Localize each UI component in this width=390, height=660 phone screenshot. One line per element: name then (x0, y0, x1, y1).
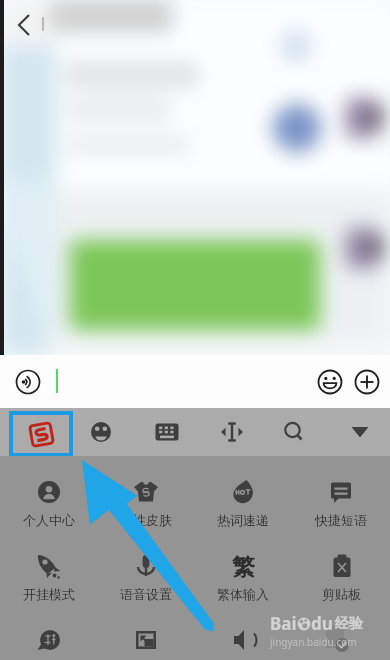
button[interactable]: 开挂模式 (0, 540, 97, 614)
staticText: 个人中心 (23, 512, 75, 528)
button[interactable]: none (292, 614, 390, 660)
button[interactable]: Keyboard (147, 408, 187, 456)
button[interactable]: 热词速递 (194, 466, 292, 540)
button[interactable]: Back (5, 6, 43, 44)
button[interactable]: Move cursor (212, 408, 252, 456)
button[interactable]: 语音设置 (97, 540, 194, 614)
staticText: 经验 (335, 615, 363, 633)
staticText: 个性皮肤 (120, 512, 172, 528)
staticText: 快捷短语 (315, 512, 367, 528)
staticText: jingyan.baidu.com (270, 635, 357, 649)
button[interactable]: 剪贴板 (292, 540, 390, 614)
button[interactable]: Sogou menu (13, 415, 69, 453)
button[interactable]: Emoji (81, 408, 121, 456)
button[interactable]: 快捷短语 (292, 466, 390, 540)
button[interactable]: Emoji (314, 366, 346, 398)
button[interactable]: translate (0, 614, 97, 660)
button[interactable]: Search (274, 408, 314, 456)
button[interactable]: Add (351, 366, 383, 398)
button[interactable]: 个人中心 (0, 466, 97, 540)
button[interactable]: 繁体输入 (194, 540, 292, 614)
staticText: 语音设置 (120, 586, 172, 602)
staticText: 开挂模式 (23, 586, 75, 602)
button[interactable]: Collapse (340, 408, 380, 456)
staticText: 热词速递 (217, 512, 269, 528)
button[interactable]: 个性皮肤 (97, 466, 194, 540)
staticText: du (311, 612, 333, 635)
staticText: 剪贴板 (322, 586, 361, 602)
button[interactable]: split (97, 614, 194, 660)
staticText: 繁体输入 (217, 586, 269, 602)
button[interactable]: sound (194, 614, 292, 660)
button[interactable]: Voice input (12, 366, 44, 398)
staticText: Bai (270, 612, 297, 635)
staticText: 繁 (232, 553, 255, 579)
